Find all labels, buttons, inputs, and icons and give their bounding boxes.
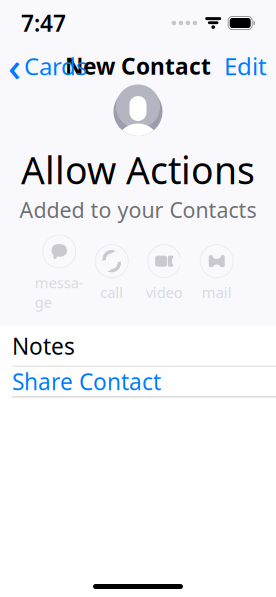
button[interactable]: mail xyxy=(190,245,243,302)
button[interactable]: Share Contact xyxy=(0,367,276,397)
staticText: Notes xyxy=(12,331,75,361)
button[interactable]: Edit xyxy=(212,43,267,89)
button[interactable]: Notes xyxy=(0,326,276,366)
button[interactable]: ‹ xyxy=(9,43,97,89)
staticText: call xyxy=(100,283,123,302)
staticText: message xyxy=(35,273,84,312)
button[interactable]: call xyxy=(85,245,138,302)
staticText: Edit xyxy=(224,50,267,82)
staticText: Cards xyxy=(24,50,87,82)
staticText: mail xyxy=(202,283,232,302)
staticText: Added to your Contacts xyxy=(19,196,256,224)
staticText: New Contact xyxy=(65,51,211,81)
button[interactable]: video xyxy=(138,245,190,302)
staticText: ‹ xyxy=(8,39,21,92)
staticText: Share Contact xyxy=(12,366,161,397)
staticText: video xyxy=(146,283,183,302)
staticText: 7:47 xyxy=(21,8,66,38)
button[interactable]: message xyxy=(33,235,85,312)
staticText: Allow Actions xyxy=(21,145,255,195)
